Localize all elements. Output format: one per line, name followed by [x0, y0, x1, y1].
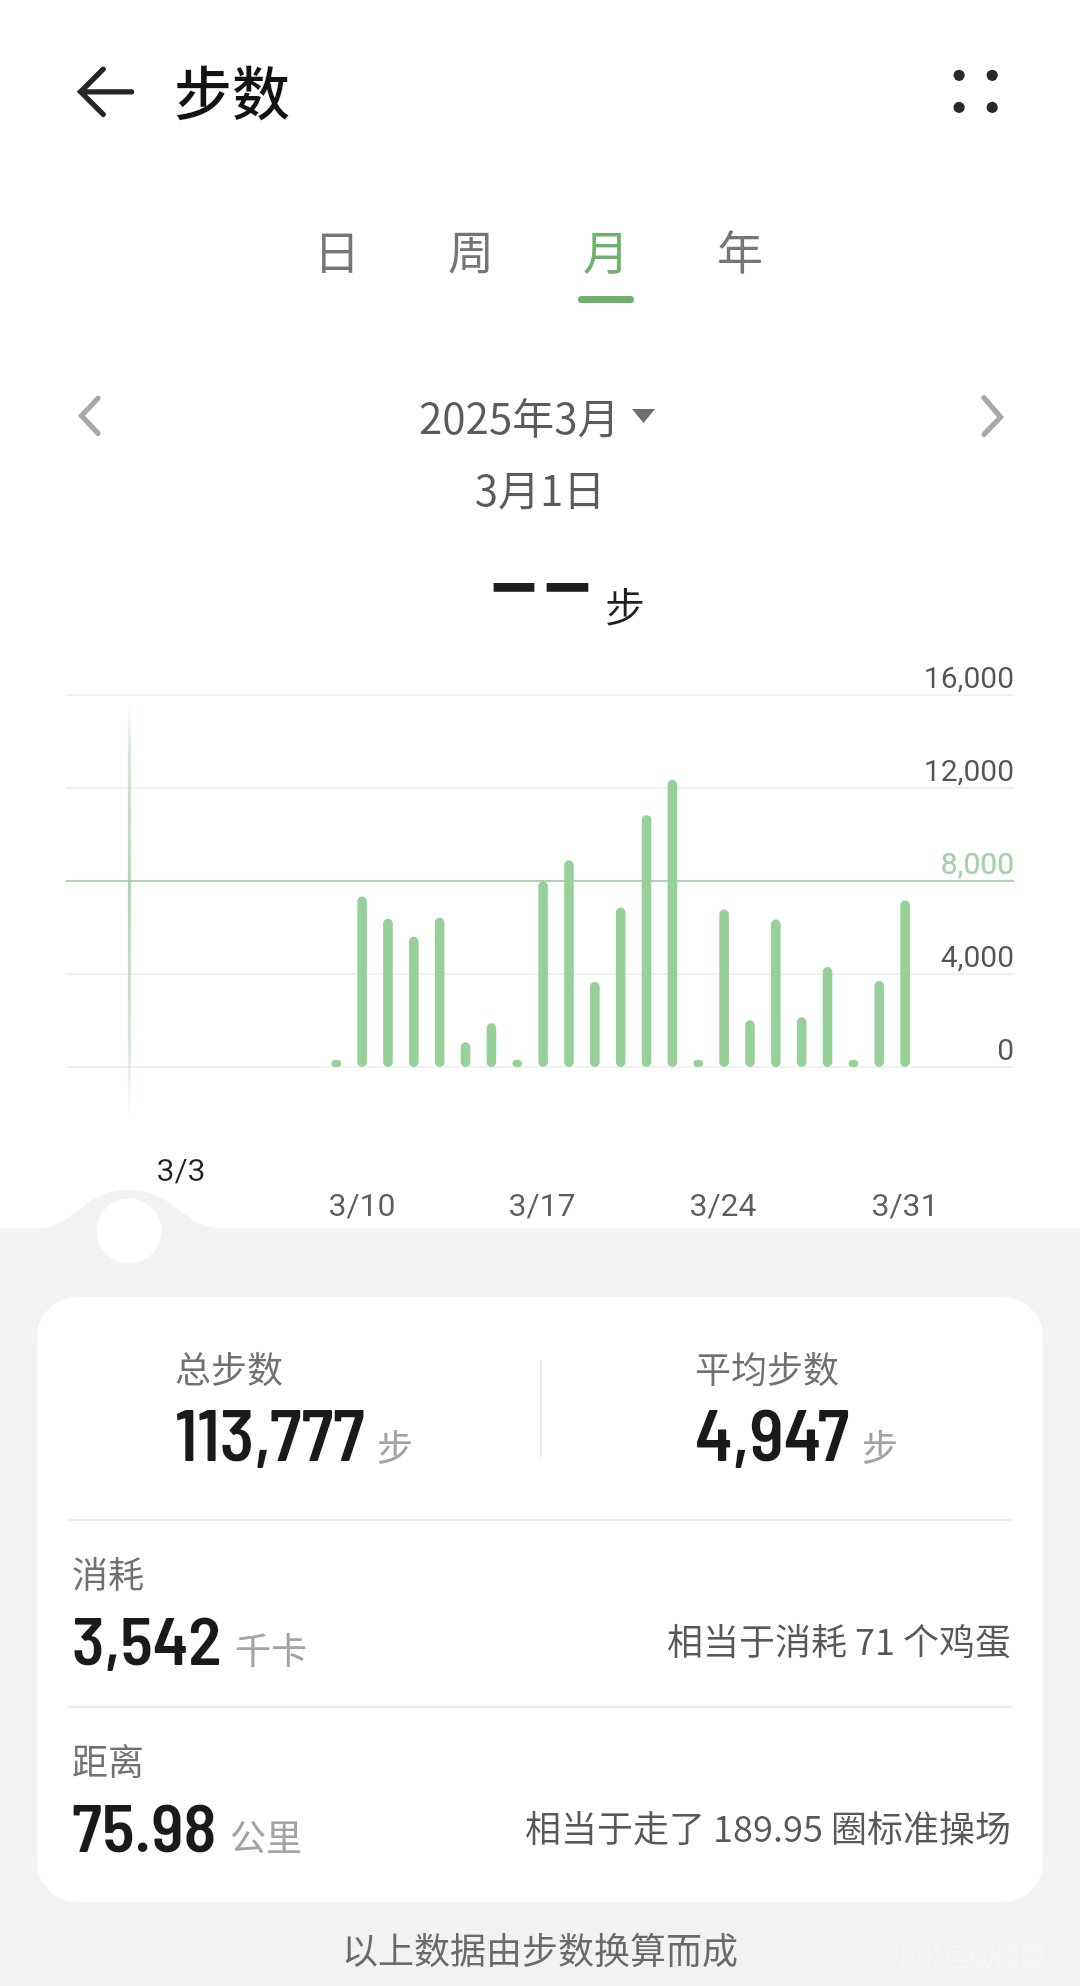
staticText: 12,000: [814, 753, 1014, 788]
staticText: 3/24: [653, 1186, 793, 1224]
button[interactable]: 月: [539, 204, 673, 308]
button[interactable]: 日: [270, 204, 404, 308]
staticText: 平均步数: [695, 1341, 840, 1393]
staticText: 75.98: [72, 1784, 217, 1866]
button[interactable]: Previous month: [52, 380, 128, 452]
staticText: 3月1日: [0, 457, 1080, 518]
button[interactable]: 周: [404, 204, 538, 308]
staticText: 千卡: [235, 1622, 308, 1674]
staticText: 相当于消耗 71 个鸡蛋: [667, 1613, 1012, 1665]
button[interactable]: Next month: [958, 380, 1034, 452]
staticText: 步: [605, 576, 645, 634]
button[interactable]: Back: [52, 44, 160, 140]
staticText: 步: [862, 1419, 899, 1471]
staticText: 周: [448, 216, 494, 283]
staticText: 2025年3月: [419, 385, 620, 446]
button[interactable]: 2025年3月: [411, 378, 665, 444]
staticText: 步: [377, 1419, 414, 1471]
button[interactable]: More options: [928, 44, 1024, 140]
staticText: 日: [314, 216, 360, 283]
staticText: 公里: [230, 1809, 303, 1861]
staticText: 以上数据由步数换算而成: [0, 1922, 1080, 1974]
staticText: 距离: [72, 1733, 145, 1785]
staticText: 3,542: [72, 1597, 222, 1679]
staticText: 113,777: [175, 1389, 365, 1475]
staticText: 3/10: [292, 1186, 432, 1224]
staticText: 0: [814, 1032, 1014, 1067]
staticText: 消耗: [72, 1546, 145, 1598]
staticText: 步数: [174, 48, 291, 132]
staticText: 相当于走了 189.95 圈标准操场: [525, 1800, 1012, 1852]
staticText: 年: [717, 216, 763, 283]
staticText: 16,000: [814, 660, 1014, 695]
staticText: 总步数: [175, 1341, 284, 1393]
staticText: 4,000: [814, 939, 1014, 974]
staticText: 4,947: [695, 1389, 850, 1475]
staticText: 3/17: [472, 1186, 612, 1224]
staticText: 月: [583, 216, 629, 283]
staticText: 3/31: [835, 1186, 975, 1224]
staticText: 8,000: [814, 846, 1014, 881]
button[interactable]: 年: [673, 204, 807, 308]
staticText: 3/3: [111, 1151, 251, 1189]
